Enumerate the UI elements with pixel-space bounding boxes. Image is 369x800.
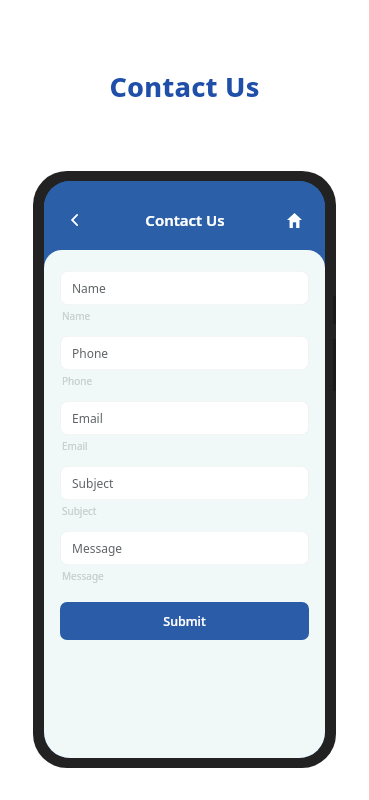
staticText: Email (72, 410, 103, 426)
staticText: Submit (163, 613, 206, 630)
staticText: Contact Us (145, 210, 225, 230)
staticText: Phone (62, 374, 93, 388)
button[interactable]: Back (58, 203, 92, 237)
staticText: Message (62, 569, 104, 583)
staticText: Email (62, 439, 88, 453)
staticText: Subject (72, 475, 114, 491)
staticText: Message (72, 540, 123, 556)
button[interactable]: Subject (60, 466, 309, 500)
button[interactable]: Submit (60, 602, 309, 640)
button[interactable]: Email (60, 401, 309, 435)
button[interactable]: Name (60, 271, 309, 305)
staticText: Name (62, 309, 91, 323)
staticText: Phone (72, 345, 109, 361)
staticText: Name (72, 280, 106, 296)
staticText: Subject (62, 504, 97, 518)
button[interactable]: Phone (60, 336, 309, 370)
button[interactable]: Home (277, 203, 311, 237)
staticText: Contact Us (109, 68, 260, 105)
button[interactable]: Message (60, 531, 309, 565)
